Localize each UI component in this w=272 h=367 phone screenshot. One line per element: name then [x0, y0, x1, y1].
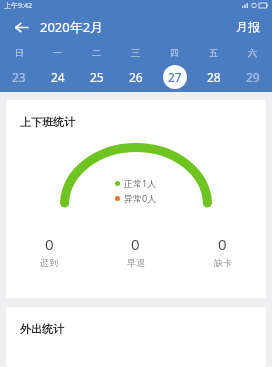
staticText: 四: [170, 47, 179, 58]
staticText: 五: [209, 47, 218, 58]
button[interactable]: 24: [38, 62, 77, 92]
staticText: 缺卡: [214, 257, 232, 268]
staticText: 上下班统计: [20, 115, 75, 129]
staticText: 上午9:42: [4, 1, 32, 11]
staticText: 28: [207, 69, 221, 85]
button[interactable]: 25: [77, 62, 116, 92]
staticText: 日: [15, 47, 24, 58]
staticText: 早退: [127, 257, 145, 268]
button[interactable]: 0: [92, 234, 179, 268]
button[interactable]: Back: [6, 12, 36, 42]
staticText: 0: [218, 234, 227, 254]
staticText: 24: [51, 69, 65, 85]
staticText: 六: [248, 47, 257, 58]
staticText: 25: [90, 69, 104, 85]
staticText: 正常1人: [124, 177, 157, 189]
button[interactable]: 26: [116, 62, 155, 92]
staticText: 0: [131, 234, 140, 254]
button[interactable]: 28: [194, 62, 233, 92]
button[interactable]: 上下班统计: [6, 100, 266, 298]
button[interactable]: 29: [233, 62, 272, 92]
staticText: 异常0人: [124, 192, 157, 204]
staticText: 迟到: [40, 257, 58, 268]
staticText: 外出统计: [20, 322, 64, 336]
staticText: 二: [92, 47, 101, 58]
staticText: 27: [168, 69, 182, 85]
staticText: 月报: [236, 19, 260, 34]
staticText: 29: [246, 69, 260, 85]
button[interactable]: 27: [155, 62, 194, 92]
button[interactable]: 月报: [232, 16, 264, 37]
button[interactable]: 外出统计: [6, 307, 266, 367]
button[interactable]: 0: [6, 234, 92, 268]
staticText: 0: [45, 234, 54, 254]
button[interactable]: 23: [0, 62, 38, 92]
button[interactable]: 0: [179, 234, 266, 268]
staticText: 2020年2月: [40, 18, 104, 36]
staticText: 一: [53, 47, 62, 58]
staticText: 三: [131, 47, 140, 58]
staticText: 26: [129, 69, 143, 85]
staticText: 23: [12, 69, 26, 85]
